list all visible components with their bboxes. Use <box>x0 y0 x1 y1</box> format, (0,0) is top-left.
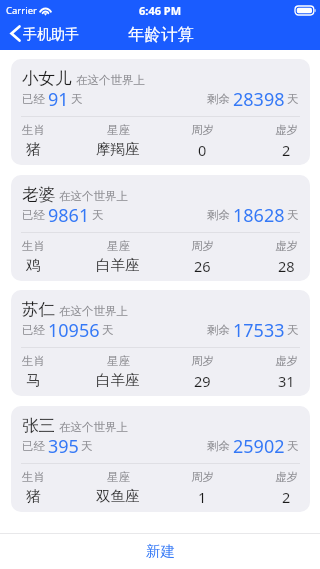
staticText: 已经 <box>22 92 45 106</box>
staticText: 6:46 PM <box>139 3 182 18</box>
staticText: 26 <box>194 256 211 276</box>
staticText: 星座 <box>107 239 130 253</box>
staticText: 在这个世界上 <box>76 73 145 87</box>
staticText: 虚岁 <box>275 354 298 368</box>
staticText: 在这个世界上 <box>59 420 128 434</box>
staticText: 在这个世界上 <box>59 189 128 203</box>
staticText: 周岁 <box>191 239 214 253</box>
staticText: 2 <box>282 140 291 160</box>
staticText: 天 <box>287 439 299 453</box>
staticText: 天 <box>287 92 299 106</box>
button[interactable]: 张三 <box>11 406 310 512</box>
staticText: 天 <box>287 208 299 222</box>
staticText: 已经 <box>22 439 45 453</box>
button[interactable]: Back <box>0 23 87 47</box>
staticText: 张三 <box>22 415 55 436</box>
staticText: 天 <box>92 208 104 222</box>
staticText: 在这个世界上 <box>59 304 128 318</box>
staticText: 28 <box>278 256 295 276</box>
staticText: 生肖 <box>22 354 45 368</box>
staticText: 10956 <box>48 318 100 343</box>
other: Back <box>10 25 21 42</box>
staticText: 猪 <box>26 140 41 158</box>
staticText: 28398 <box>233 87 285 112</box>
staticText: 29 <box>194 371 211 391</box>
button[interactable]: 苏仁 <box>11 290 310 396</box>
staticText: 周岁 <box>191 470 214 484</box>
staticText: 周岁 <box>191 354 214 368</box>
button[interactable]: 新建 <box>0 534 320 569</box>
staticText: 猪 <box>26 487 41 505</box>
staticText: 395 <box>48 434 79 459</box>
staticText: 31 <box>278 371 295 391</box>
staticText: 白羊座 <box>96 371 140 389</box>
staticText: 天 <box>287 323 299 337</box>
staticText: 17533 <box>233 318 285 343</box>
staticText: 鸡 <box>26 256 41 274</box>
staticText: 生肖 <box>22 123 45 137</box>
staticText: 新建 <box>146 542 175 560</box>
staticText: 91 <box>48 87 69 112</box>
staticText: 虚岁 <box>275 239 298 253</box>
staticText: 虚岁 <box>275 123 298 137</box>
staticText: 手机助手 <box>23 26 79 44</box>
button[interactable]: 老婆 <box>11 175 310 281</box>
staticText: 剩余 <box>207 439 230 453</box>
staticText: 星座 <box>107 123 130 137</box>
staticText: 生肖 <box>22 470 45 484</box>
staticText: 25902 <box>233 434 285 459</box>
button[interactable]: 小女儿 <box>11 59 310 165</box>
staticText: 0 <box>198 140 207 160</box>
staticText: 摩羯座 <box>96 140 140 158</box>
staticText: Carrier <box>6 4 37 17</box>
staticText: 年龄计算 <box>128 24 194 45</box>
staticText: 星座 <box>107 470 130 484</box>
staticText: 虚岁 <box>275 470 298 484</box>
staticText: 剩余 <box>207 92 230 106</box>
staticText: 生肖 <box>22 239 45 253</box>
staticText: 星座 <box>107 354 130 368</box>
staticText: 剩余 <box>207 208 230 222</box>
staticText: 9861 <box>48 203 90 228</box>
staticText: 老婆 <box>22 184 55 205</box>
staticText: 白羊座 <box>96 256 140 274</box>
staticText: 天 <box>71 92 83 106</box>
staticText: 马 <box>26 371 41 389</box>
staticText: 1 <box>198 487 207 507</box>
staticText: 已经 <box>22 208 45 222</box>
staticText: 2 <box>282 487 291 507</box>
staticText: 18628 <box>233 203 285 228</box>
staticText: 已经 <box>22 323 45 337</box>
staticText: 天 <box>81 439 93 453</box>
staticText: 剩余 <box>207 323 230 337</box>
staticText: 小女儿 <box>22 68 72 89</box>
staticText: 天 <box>102 323 114 337</box>
staticText: 周岁 <box>191 123 214 137</box>
staticText: 双鱼座 <box>96 487 140 505</box>
staticText: 苏仁 <box>22 299 55 320</box>
